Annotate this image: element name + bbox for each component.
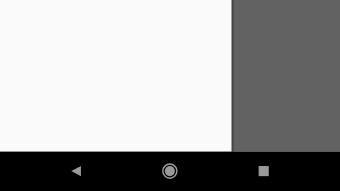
button[interactable]: Home: [146, 152, 194, 191]
button[interactable]: Side panel: [232, 0, 340, 152]
button[interactable]: Content area: [0, 0, 232, 152]
button[interactable]: Recent apps: [240, 152, 288, 191]
button[interactable]: Back: [52, 152, 100, 191]
